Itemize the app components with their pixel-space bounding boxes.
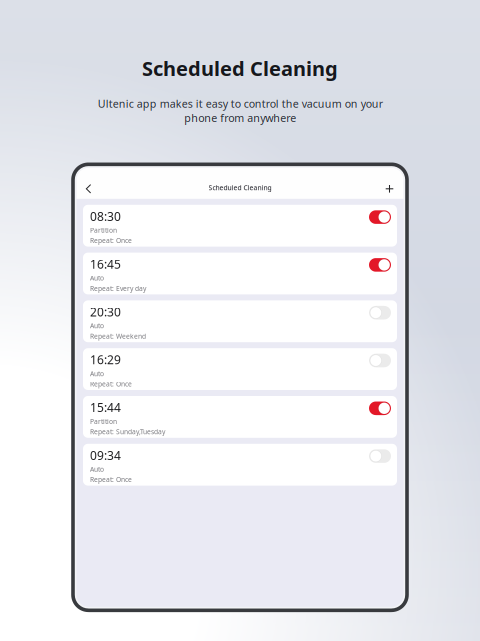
staticText: Auto xyxy=(90,321,104,330)
button[interactable]: 09:34 xyxy=(83,444,397,486)
button[interactable]: 16:29 xyxy=(83,348,397,390)
button[interactable]: 08:30 xyxy=(83,205,397,247)
staticText: Partition xyxy=(90,226,117,235)
staticText: Auto xyxy=(90,273,104,282)
button[interactable]: 16:45 xyxy=(83,253,397,294)
staticText: 15:44 xyxy=(90,399,121,415)
button[interactable]: Back xyxy=(76,181,100,197)
staticText: Partition xyxy=(90,417,117,426)
staticText: Scheduled Cleaning xyxy=(208,183,271,192)
staticText: Repeat: Every day xyxy=(90,284,146,293)
staticText: Auto xyxy=(90,369,104,378)
staticText: 09:34 xyxy=(90,447,121,463)
staticText: Repeat: Once xyxy=(90,236,132,245)
staticText: Repeat: Once xyxy=(90,379,132,388)
staticText: Auto xyxy=(90,465,104,474)
staticText: Ultenic app makes it easy to control the… xyxy=(97,97,382,125)
button[interactable]: 20:30 xyxy=(83,300,397,342)
staticText: 20:30 xyxy=(90,304,121,320)
button[interactable]: Add schedule xyxy=(377,181,401,197)
staticText: Scheduled Cleaning xyxy=(142,55,338,82)
staticText: Repeat: Weekend xyxy=(90,332,146,341)
staticText: 08:30 xyxy=(90,208,121,224)
button[interactable]: 15:44 xyxy=(83,396,397,438)
staticText: Repeat: Sunday,Tuesday xyxy=(90,427,165,436)
staticText: 16:45 xyxy=(90,256,121,272)
staticText: Repeat: Once xyxy=(90,475,132,484)
staticText: 16:29 xyxy=(90,352,121,368)
